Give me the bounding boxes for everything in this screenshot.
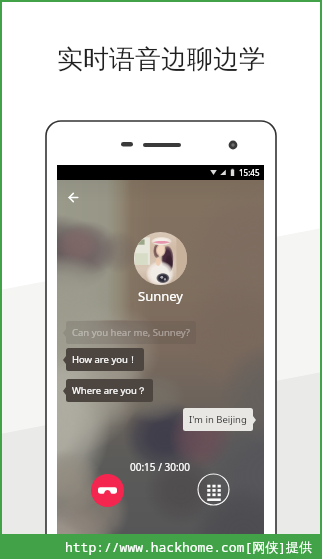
staticText: Sunney xyxy=(138,287,183,305)
button[interactable]: Dial pad xyxy=(197,473,230,506)
staticText: 实时语音边聊边学 xyxy=(57,43,265,76)
staticText: http://www.hackhome.com[网侠]提供 xyxy=(65,538,313,556)
staticText: Where are you？ xyxy=(72,384,147,397)
button[interactable]: Can you hear me, Sunney? xyxy=(66,321,196,344)
button[interactable]: I'm in Beijing xyxy=(183,408,253,431)
staticText: I'm in Beijing xyxy=(189,413,247,426)
button[interactable]: How are you！ xyxy=(66,348,144,371)
staticText: How are you！ xyxy=(72,353,138,366)
button[interactable]: End call xyxy=(91,474,124,507)
staticText: Can you hear me, Sunney? xyxy=(72,326,190,339)
staticText: 15:45 xyxy=(239,167,260,178)
button[interactable]: Back xyxy=(62,186,84,208)
staticText: 00:15 / 30:00 xyxy=(130,460,191,474)
button[interactable]: Where are you？ xyxy=(66,379,153,402)
